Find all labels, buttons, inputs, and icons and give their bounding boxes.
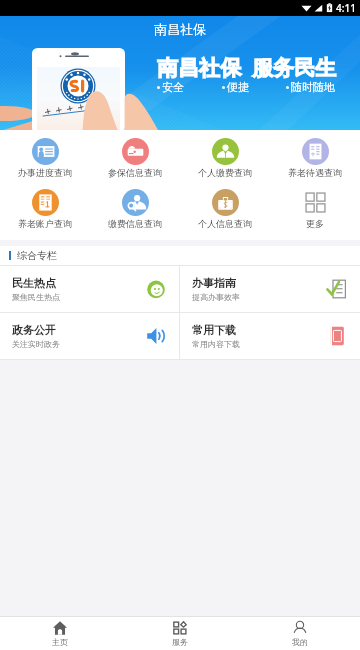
staticText: 提高办事效率	[192, 292, 240, 302]
staticText: 便捷	[227, 80, 249, 94]
staticText: 聚焦民生热点	[12, 292, 60, 302]
staticText: 办事进度查询	[18, 167, 72, 178]
staticText: 更多	[306, 218, 324, 229]
button[interactable]: 参保信息查询	[90, 138, 180, 178]
button[interactable]: 常用下载	[180, 313, 360, 359]
button[interactable]: 办事进度查询	[0, 138, 90, 178]
staticText: 常用内容下载	[192, 339, 240, 349]
button[interactable]: 服务	[120, 617, 240, 650]
staticText: 服务	[172, 637, 188, 647]
staticText: 南昌社保 服务民生	[157, 53, 336, 82]
staticText: 政务公开	[12, 323, 56, 337]
staticText: 养老账户查询	[18, 218, 72, 229]
button[interactable]: 个人信息查询	[180, 189, 270, 229]
button[interactable]: 个人缴费查询	[180, 138, 270, 178]
staticText: 民生热点	[12, 276, 56, 290]
staticText: 个人信息查询	[198, 218, 252, 229]
button[interactable]: 主页	[0, 617, 120, 650]
staticText: 关注实时政务	[12, 339, 60, 349]
staticText: 缴费信息查询	[108, 218, 162, 229]
staticText: 4:11	[336, 1, 356, 15]
staticText: 办事指南	[192, 276, 236, 290]
staticText: 主页	[52, 637, 68, 647]
staticText: 参保信息查询	[108, 167, 162, 178]
staticText: 养老待遇查询	[288, 167, 342, 178]
staticText: 南昌社保	[154, 21, 206, 37]
staticText: 我的	[292, 637, 308, 647]
button[interactable]: 更多	[270, 189, 360, 229]
button[interactable]: 政务公开	[0, 313, 179, 359]
staticText: 随时随地	[291, 80, 335, 94]
staticText: 个人缴费查询	[198, 167, 252, 178]
button[interactable]: 缴费信息查询	[90, 189, 180, 229]
button[interactable]: 办事指南	[180, 266, 360, 312]
staticText: 安全	[162, 80, 184, 94]
button[interactable]: 养老待遇查询	[270, 138, 360, 178]
button[interactable]: 民生热点	[0, 266, 179, 312]
staticText: 综合专栏	[17, 249, 57, 262]
button[interactable]: 养老账户查询	[0, 189, 90, 229]
staticText: 常用下载	[192, 323, 236, 337]
button[interactable]: 我的	[240, 617, 360, 650]
